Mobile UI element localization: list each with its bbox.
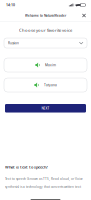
staticText: What is text to speech? (5, 164, 48, 170)
staticText: NEXT (41, 106, 49, 110)
staticText: Choose your favorite voice (19, 27, 72, 33)
button[interactable]: Tatyana (0, 78, 91, 92)
staticText: Russian (8, 41, 19, 45)
button[interactable]: Maxim (0, 58, 91, 72)
staticText: Welcome to NaturalReader (25, 13, 66, 17)
button[interactable]: Close (80, 11, 88, 19)
button[interactable]: NEXT (0, 104, 91, 112)
staticText: Maxim (45, 63, 56, 67)
staticText: 14:10 (6, 3, 15, 7)
staticText: synthesis) is a technology that converts… (5, 185, 81, 189)
staticText: Text to speech (known as TTS, Read aloud… (5, 177, 83, 181)
staticText: Tatyana (44, 83, 57, 87)
button[interactable]: Russian (0, 38, 91, 48)
